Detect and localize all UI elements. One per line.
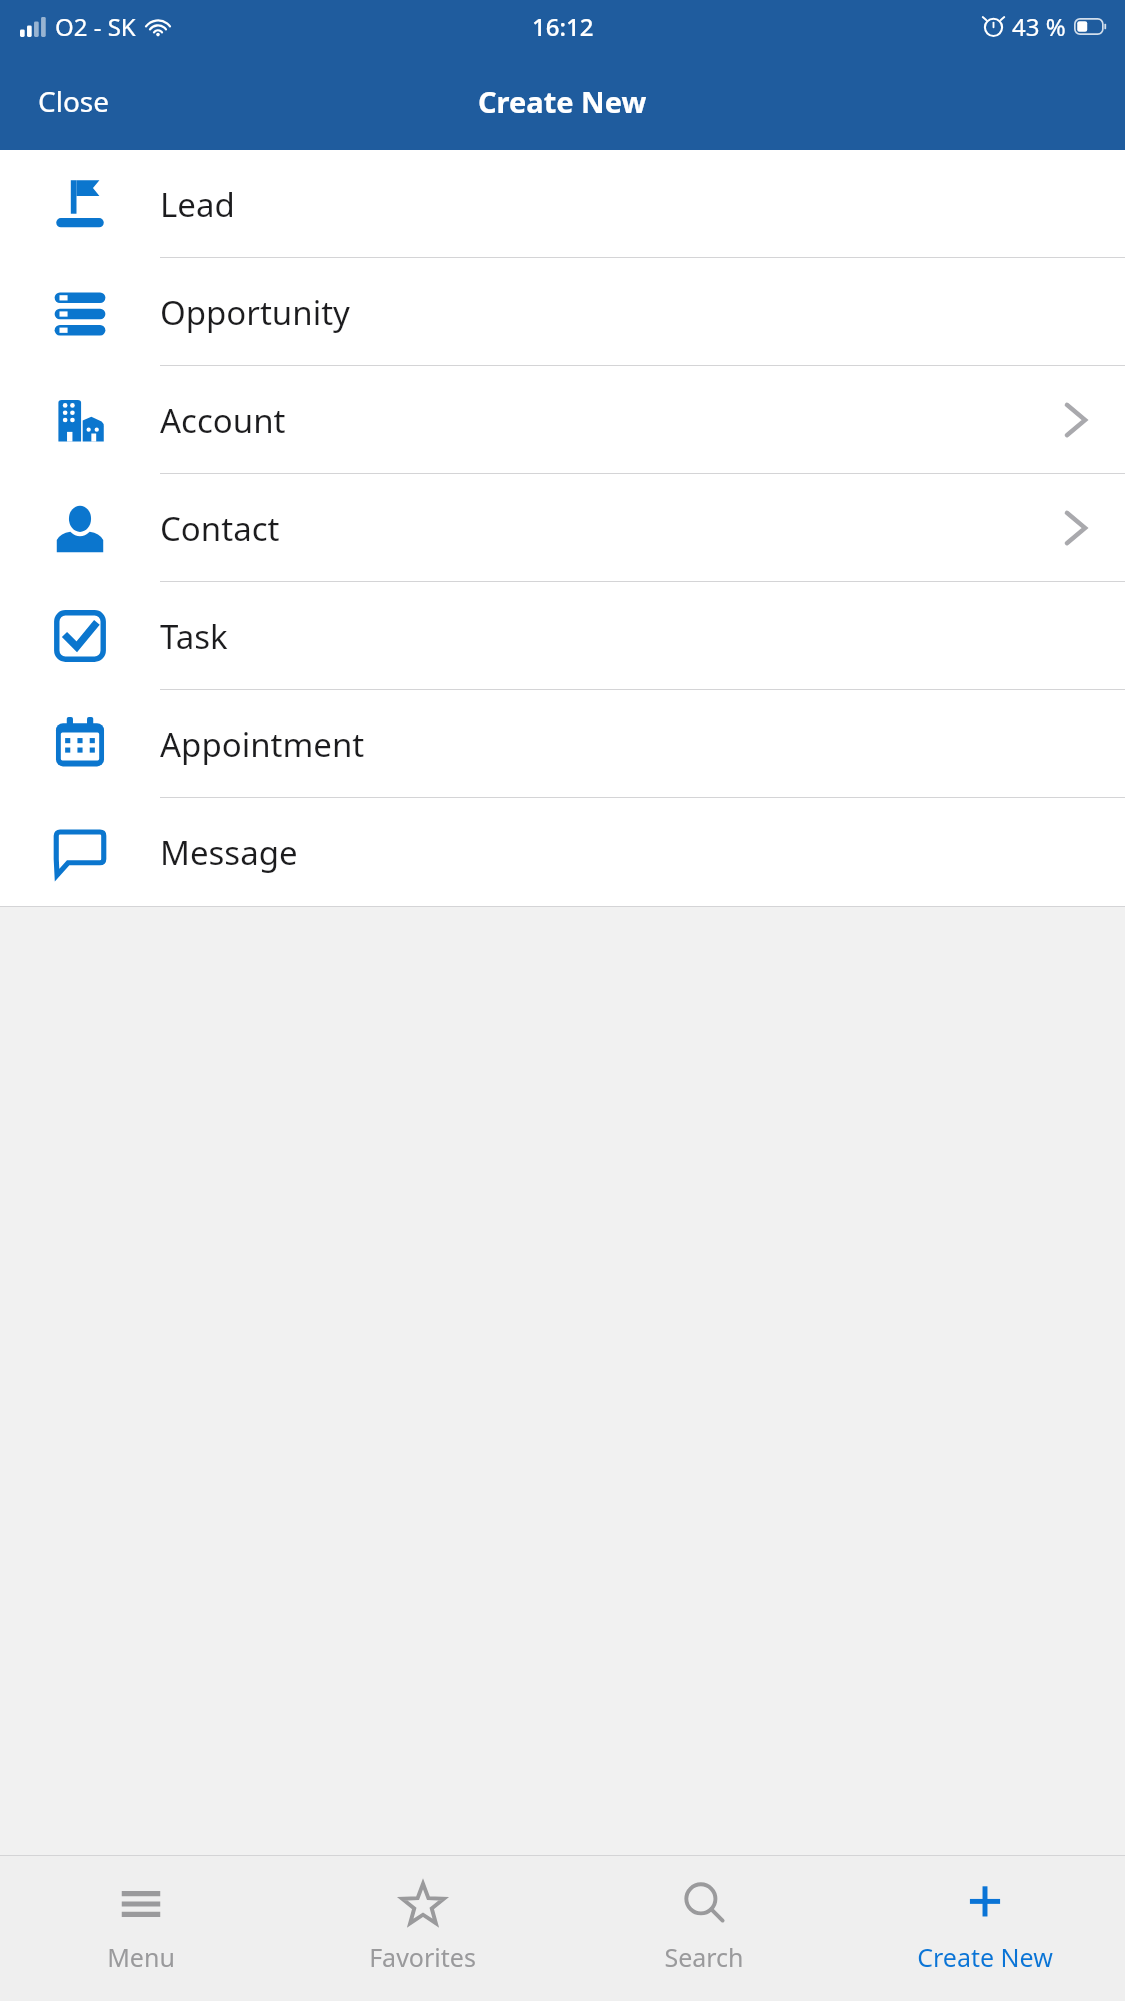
staticText: Create New (917, 1940, 1053, 1974)
staticText: 16:12 (532, 10, 594, 43)
button[interactable]: Lead (0, 150, 1125, 258)
staticText: Lead (160, 182, 235, 227)
staticText: Create New (478, 82, 647, 121)
staticText: Appointment (160, 722, 365, 767)
button[interactable]: Contact (0, 474, 1125, 582)
button[interactable]: Message (0, 798, 1125, 906)
button[interactable]: Opportunity (0, 258, 1125, 366)
button[interactable]: Account (0, 366, 1125, 474)
staticText: Account (160, 398, 286, 443)
staticText: Favorites (369, 1940, 476, 1974)
button[interactable]: Favorites (282, 1856, 563, 2001)
staticText: Search (664, 1940, 744, 1974)
staticText: Contact (160, 506, 280, 551)
staticText: Opportunity (160, 290, 350, 335)
staticText: Close (38, 82, 110, 120)
staticText: O2 - SK (55, 10, 136, 43)
button[interactable]: Appointment (0, 690, 1125, 798)
staticText: Task (160, 614, 228, 659)
button[interactable]: Task (0, 582, 1125, 690)
button[interactable]: Menu (0, 1856, 282, 2001)
staticText: 43 % (1012, 10, 1066, 43)
button[interactable]: Create New (844, 1856, 1125, 2001)
staticText: Menu (107, 1940, 175, 1974)
button[interactable]: Search (563, 1856, 844, 2001)
staticText: Message (160, 830, 298, 875)
button[interactable]: Close (26, 74, 122, 128)
